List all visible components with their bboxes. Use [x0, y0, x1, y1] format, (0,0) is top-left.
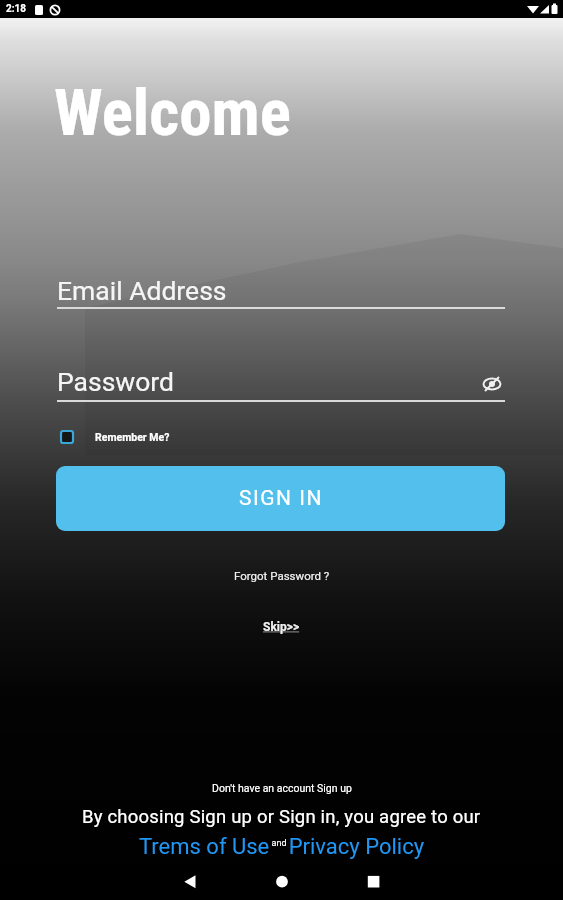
button[interactable]	[0, 863, 187, 900]
button[interactable]: Forgot Password ?	[234, 569, 330, 582]
button[interactable]	[482, 374, 502, 394]
button[interactable]: Skip>>	[263, 620, 300, 634]
staticText: Welcome	[54, 75, 291, 151]
button[interactable]: SIGN IN	[56, 466, 505, 531]
button[interactable]: Password	[57, 361, 505, 402]
staticText: By choosing Sign up or Sign in, you agre…	[82, 806, 481, 828]
button[interactable]: Trems of Use and Privacy Policy	[139, 834, 425, 860]
staticText: SIGN IN	[239, 486, 323, 511]
button[interactable]: Email Address	[57, 270, 505, 310]
staticText: Remember Me?	[95, 431, 170, 443]
button[interactable]: Remember Me?	[60, 429, 170, 445]
button[interactable]	[187, 863, 375, 900]
button[interactable]	[375, 863, 563, 900]
button[interactable]: Don't have an account Sign up	[212, 782, 352, 794]
staticText: 2:18	[6, 3, 27, 15]
staticText: Email Address	[57, 275, 227, 306]
staticText: Password	[57, 366, 175, 397]
